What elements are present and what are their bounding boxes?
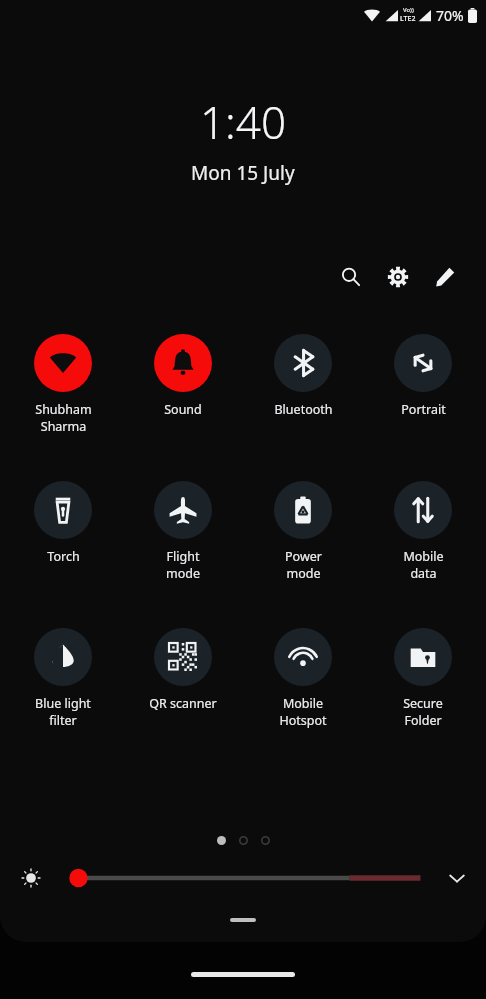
staticText: Mobile Hotspot: [279, 695, 327, 728]
staticText: Power mode: [285, 548, 322, 581]
button[interactable]: Edit: [426, 258, 463, 295]
button[interactable]: Flight mode: [138, 481, 228, 581]
button[interactable]: Portrait: [378, 334, 468, 418]
button[interactable]: Mobile data: [378, 481, 468, 581]
staticText: Bluetooth: [274, 401, 333, 418]
staticText: Portrait: [401, 401, 446, 418]
button[interactable]: Secure Folder: [378, 628, 468, 728]
button[interactable]: Blue light filter: [18, 628, 108, 728]
staticText: 70%: [436, 6, 464, 25]
staticText: Torch: [47, 548, 80, 565]
button[interactable]: [48, 868, 430, 888]
button[interactable]: QR scanner: [138, 628, 228, 712]
button[interactable]: Mobile Hotspot: [258, 628, 348, 728]
button[interactable]: Torch: [18, 481, 108, 565]
button[interactable]: Sound: [138, 334, 228, 418]
staticText: Shubham Sharma: [35, 401, 92, 434]
staticText: Vo)): [403, 6, 414, 14]
button[interactable]: Settings: [379, 258, 416, 295]
staticText: Secure Folder: [403, 695, 443, 728]
staticText: Mobile data: [403, 548, 444, 581]
button[interactable]: Shubham Sharma: [18, 334, 108, 434]
button[interactable]: Expand: [442, 863, 472, 893]
staticText: QR scanner: [149, 695, 217, 712]
staticText: Flight mode: [166, 548, 200, 581]
staticText: Sound: [164, 401, 202, 418]
staticText: 1:40: [200, 92, 287, 152]
button[interactable]: Bluetooth: [258, 334, 348, 418]
staticText: Mon 15 July: [191, 160, 295, 186]
button[interactable]: Search: [332, 258, 369, 295]
staticText: LTE2: [400, 14, 416, 24]
staticText: Blue light filter: [35, 695, 91, 728]
button[interactable]: Power mode: [258, 481, 348, 581]
